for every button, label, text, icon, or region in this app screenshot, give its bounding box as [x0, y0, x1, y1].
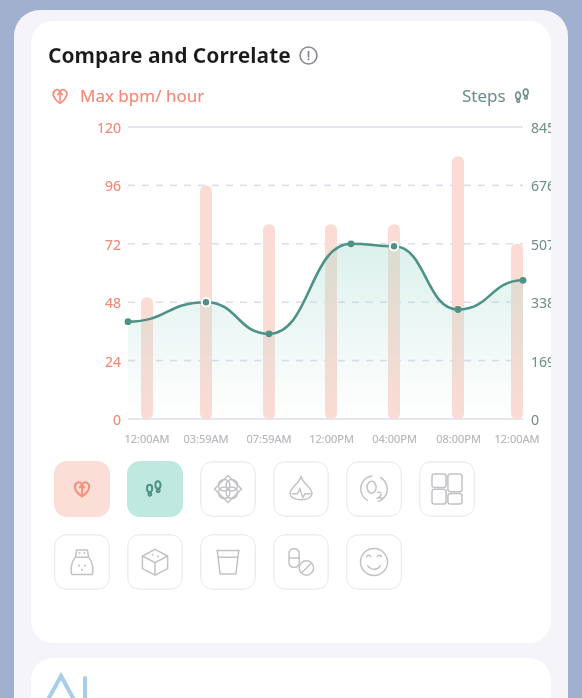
staticText: 507 — [531, 235, 551, 254]
staticText: Max bpm/ hour — [80, 84, 205, 107]
staticText: 07:59AM — [246, 431, 292, 446]
other: Information — [299, 46, 318, 65]
staticText: 0 — [112, 410, 121, 429]
button[interactable]: Max bpm/ hour — [49, 84, 205, 107]
button[interactable]: Water — [200, 534, 256, 590]
button[interactable]: Mood — [346, 534, 402, 590]
staticText: 24 — [104, 352, 121, 371]
staticText: 04:00PM — [372, 431, 417, 446]
button[interactable]: Steps — [462, 84, 533, 107]
staticText: 12:00AM — [124, 431, 170, 446]
button[interactable]: Salt — [54, 534, 110, 590]
button[interactable]: Steps — [127, 461, 183, 517]
staticText: Compare and Correlate — [48, 41, 291, 70]
staticText: 08:00PM — [436, 431, 481, 446]
staticText: 72 — [104, 235, 121, 254]
staticText: 845 — [531, 118, 551, 137]
staticText: 676 — [531, 176, 551, 195]
button[interactable]: Compare and Correlate — [48, 41, 318, 70]
button[interactable]: Sugar — [127, 534, 183, 590]
staticText: 169 — [531, 352, 551, 371]
button[interactable]: Oxygen — [346, 461, 402, 517]
staticText: 120 — [96, 118, 121, 137]
staticText: 96 — [104, 176, 121, 195]
staticText: Steps — [462, 84, 506, 107]
staticText: 12:00AM — [494, 431, 540, 446]
staticText: 03:59AM — [183, 431, 229, 446]
button[interactable]: More metrics — [419, 461, 475, 517]
button[interactable]: Activity — [200, 461, 256, 517]
staticText: 48 — [104, 293, 121, 312]
button[interactable]: Blood glucose — [273, 461, 329, 517]
staticText: 338 — [531, 293, 551, 312]
staticText: 0 — [531, 410, 540, 429]
button[interactable]: Heart rate — [54, 461, 110, 517]
staticText: 12:00PM — [309, 431, 354, 446]
button[interactable]: Medication — [273, 534, 329, 590]
